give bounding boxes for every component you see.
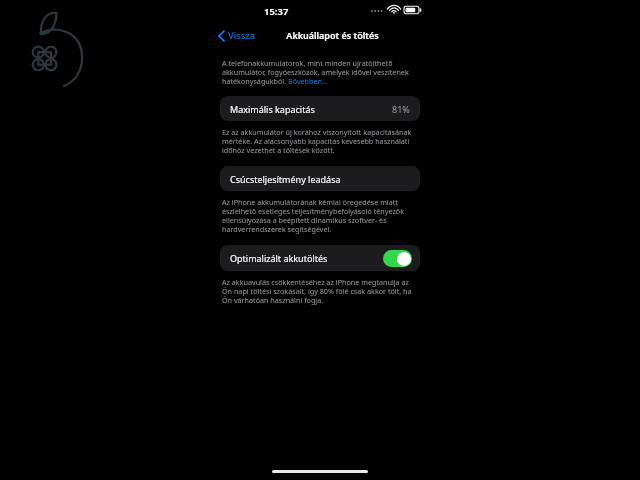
button[interactable]: Optimalizált akkutöltés kapcsoló <box>383 250 412 267</box>
button[interactable]: Maximális kapacitás <box>220 96 420 121</box>
staticText: Akkuállapot és töltés <box>286 29 379 41</box>
staticText: Ez az akkumulátor új korához viszonyítot… <box>222 127 418 156</box>
button[interactable]: Vissza <box>216 27 258 44</box>
staticText: Csúcsteljesítmény leadása <box>230 173 341 185</box>
staticText: Vissza <box>228 29 256 42</box>
staticText: A telefonakkumulátorok, mint minden újra… <box>222 58 418 87</box>
staticText: Optimalizált akkutöltés <box>230 252 328 264</box>
staticText: Az akkuavulás csökkentéséhez az iPhone m… <box>222 277 418 306</box>
staticText: Maximális kapacitás <box>230 103 315 115</box>
button[interactable]: Optimalizált akkutöltés <box>220 245 420 271</box>
staticText: Az iPhone akkumulátorának kémiai öregedé… <box>222 197 418 235</box>
button[interactable]: Csúcsteljesítmény leadása <box>220 166 420 191</box>
staticText: 81% <box>392 103 410 115</box>
other: Apple logó <box>18 8 92 92</box>
staticText: 15:37 <box>264 5 289 18</box>
